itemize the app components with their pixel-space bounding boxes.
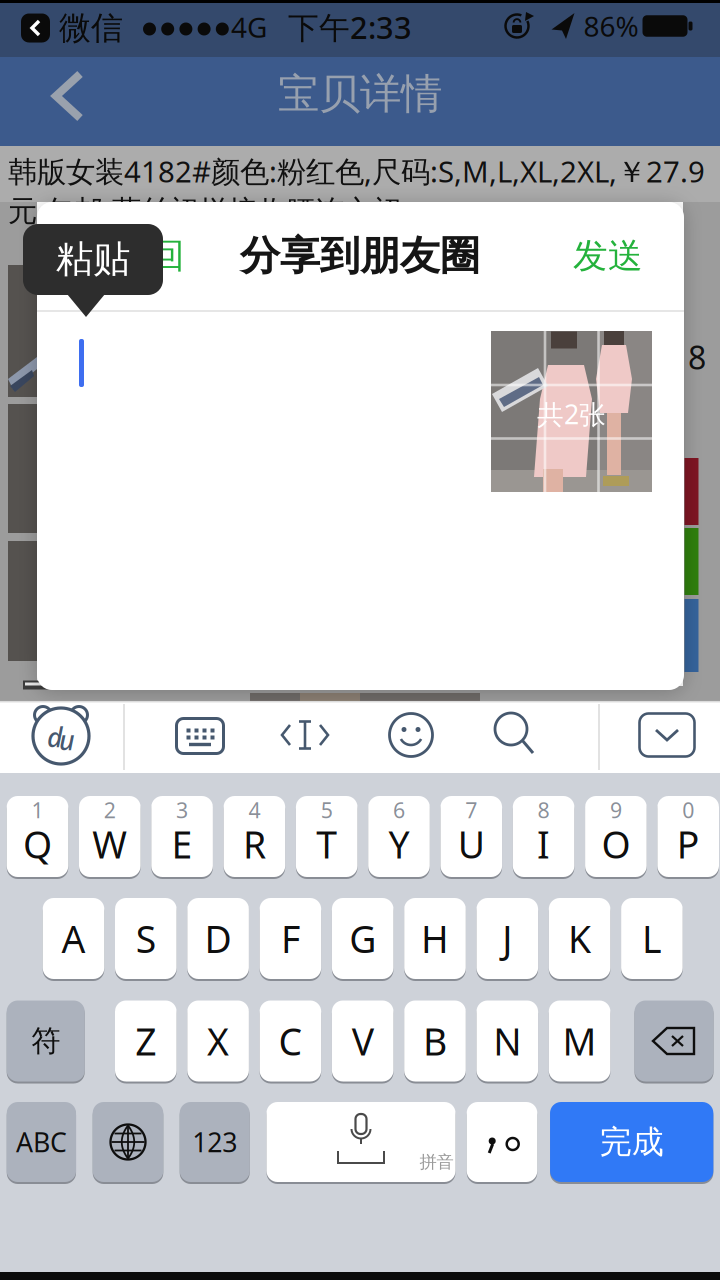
button[interactable]: P <box>657 795 719 878</box>
button[interactable]: E <box>151 795 213 878</box>
button[interactable]: 删除 <box>634 999 713 1082</box>
button[interactable]: 返回 <box>115 235 185 277</box>
staticText: H <box>421 914 449 963</box>
staticText: 9 <box>610 796 622 824</box>
button[interactable]: 百度输入法 <box>27 705 95 765</box>
button[interactable]: 搜索 <box>493 713 535 755</box>
button[interactable]: I <box>513 795 574 878</box>
staticText: 4 <box>248 796 260 824</box>
staticText: R <box>243 819 266 869</box>
button[interactable]: J <box>476 897 538 980</box>
button[interactable]: Z <box>115 999 177 1082</box>
button[interactable]: 光标 <box>279 720 331 750</box>
staticText: 8 <box>538 796 550 824</box>
button[interactable]: Q <box>7 795 68 878</box>
button[interactable]: 返回微信 <box>21 8 123 48</box>
button[interactable]: W <box>79 795 141 878</box>
staticText: F <box>281 914 300 963</box>
staticText: 123 <box>192 1124 237 1160</box>
staticText: V <box>352 1016 374 1066</box>
button[interactable]: K <box>549 897 610 980</box>
button[interactable]: F <box>260 897 321 980</box>
staticText: M <box>563 1016 597 1066</box>
button[interactable]: R <box>224 795 285 878</box>
staticText: 86% <box>583 7 638 45</box>
button[interactable]: 标点 <box>467 1101 537 1183</box>
staticText: W <box>92 819 127 869</box>
button[interactable]: 键盘 <box>176 718 223 753</box>
staticText: 韩版女装4182#颜色:粉红色,尺码:S,M,L,XL,2XL,￥27.9 <box>8 151 705 190</box>
staticText: L <box>642 914 662 963</box>
button[interactable]: G <box>332 897 393 980</box>
staticText: ABC <box>16 1124 67 1160</box>
button[interactable]: D <box>187 897 249 980</box>
staticText: 3 <box>176 796 188 824</box>
staticText: 5 <box>321 796 333 824</box>
staticText: 1 <box>31 796 43 824</box>
button[interactable]: V <box>332 999 393 1082</box>
staticText: 下午2:33 <box>288 7 412 47</box>
staticText: D <box>205 914 232 963</box>
button[interactable]: H <box>404 897 466 980</box>
staticText: d <box>47 719 63 755</box>
staticText: 共2张 <box>537 396 606 432</box>
staticText: 6 <box>393 796 405 824</box>
staticText: Y <box>388 819 409 869</box>
button[interactable]: C <box>260 999 321 1082</box>
button[interactable]: T <box>296 795 357 878</box>
staticText: U <box>458 819 485 869</box>
staticText: 宝贝详情 <box>278 69 442 119</box>
button[interactable]: 空格 <box>266 1101 455 1183</box>
staticText: N <box>493 1016 521 1066</box>
staticText: 完成 <box>600 1122 664 1162</box>
button[interactable]: O <box>585 795 647 878</box>
staticText: 7 <box>465 796 477 824</box>
staticText: P <box>677 819 700 869</box>
staticText: E <box>172 819 193 869</box>
staticText: C <box>278 1016 302 1066</box>
staticText: O <box>601 819 630 869</box>
button[interactable]: 粘贴 <box>23 224 163 318</box>
staticText: 分享到朋友圈 <box>240 231 480 280</box>
staticText: 返回 <box>115 235 185 277</box>
staticText: 拼音 <box>419 1151 453 1173</box>
staticText: G <box>349 914 376 963</box>
button[interactable]: 切换输入法 <box>93 1101 163 1183</box>
staticText: B <box>423 1016 447 1066</box>
button[interactable]: ABC <box>7 1101 76 1183</box>
button[interactable]: 发送 <box>573 235 643 277</box>
staticText: 符 <box>31 1023 60 1059</box>
button[interactable]: S <box>115 897 177 980</box>
staticText: 0 <box>682 796 694 824</box>
staticText: I <box>537 819 550 869</box>
staticText: 元,包邮 蕾丝裙拼接收腰连衣裙 <box>8 190 402 229</box>
staticText: 8 <box>688 336 706 378</box>
staticText: 2 <box>104 796 116 824</box>
button[interactable]: 收起键盘 <box>639 713 694 756</box>
button[interactable]: 符 <box>7 999 85 1082</box>
button[interactable]: 图片 共2张 <box>491 331 652 492</box>
button[interactable]: Y <box>368 795 430 878</box>
staticText: K <box>568 914 591 963</box>
button[interactable]: N <box>476 999 538 1082</box>
button[interactable]: M <box>549 999 610 1082</box>
staticText: Q <box>23 819 52 869</box>
button[interactable]: 123 <box>180 1101 250 1183</box>
staticText: Z <box>135 1016 156 1066</box>
staticText: 粘贴 <box>56 236 130 282</box>
button[interactable]: U <box>440 795 502 878</box>
button[interactable]: 完成 <box>550 1101 713 1183</box>
staticText: 微信 <box>59 8 123 48</box>
button[interactable]: 返回 <box>50 70 90 122</box>
staticText: S <box>136 914 156 963</box>
button[interactable]: X <box>187 999 249 1082</box>
staticText: u <box>59 722 75 758</box>
button[interactable]: L <box>621 897 683 980</box>
staticText: 发送 <box>573 235 643 277</box>
staticText: 4G <box>231 8 267 46</box>
staticText: X <box>207 1016 229 1066</box>
button[interactable]: B <box>404 999 466 1082</box>
button[interactable]: A <box>43 897 104 980</box>
button[interactable]: 表情 <box>389 713 432 756</box>
staticText: T <box>316 819 337 869</box>
